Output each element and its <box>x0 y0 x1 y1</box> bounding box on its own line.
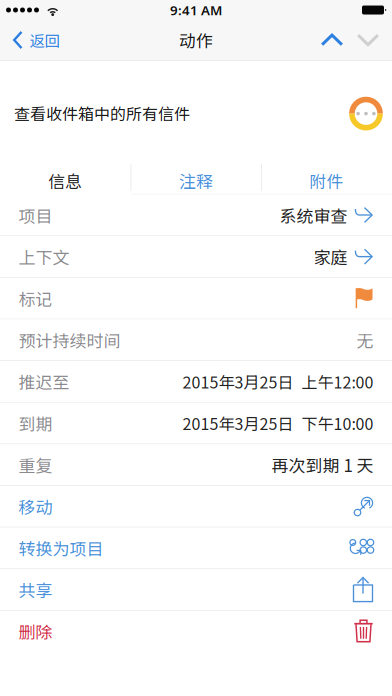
staticText: 转换为项目 <box>18 536 103 560</box>
button[interactable]: 上下文 <box>0 236 392 278</box>
button[interactable]: 附件 <box>261 161 392 195</box>
staticText: 返回 <box>29 29 59 51</box>
staticText: 无 <box>356 328 373 352</box>
button[interactable]: 到期 <box>0 403 392 444</box>
staticText: 2015年3月25日 下午10:00 <box>182 411 373 435</box>
button[interactable]: 转换为项目 <box>0 528 392 569</box>
staticText: 标记 <box>18 286 52 310</box>
staticText: 9:41 AM <box>170 1 222 19</box>
staticText: 查看收件箱中的所有信件 <box>14 101 190 125</box>
button[interactable]: 信息 <box>0 161 131 195</box>
staticText: 信息 <box>48 168 82 193</box>
staticText: 家庭 <box>313 244 347 269</box>
staticText: 重复 <box>18 452 52 477</box>
staticText: 项目 <box>18 203 52 227</box>
staticText: 注释 <box>179 168 213 193</box>
button[interactable]: 预计持续时间 <box>0 319 392 361</box>
button[interactable]: 标记 <box>0 278 392 319</box>
staticText: 上下文 <box>18 244 69 269</box>
staticText: 共享 <box>18 577 52 602</box>
button[interactable]: 移动 <box>0 486 392 527</box>
staticText: 2015年3月25日 上午12:00 <box>182 370 373 393</box>
staticText: 动作 <box>179 28 213 52</box>
button[interactable]: Next item <box>350 20 386 60</box>
button[interactable]: 项目 <box>0 195 392 236</box>
staticText: 到期 <box>18 411 52 435</box>
staticText: 附件 <box>310 168 344 193</box>
staticText: 移动 <box>18 494 52 519</box>
button[interactable]: Previous item <box>314 20 350 60</box>
button[interactable]: 删除 <box>0 611 392 652</box>
staticText: 再次到期 1 天 <box>271 452 373 477</box>
button[interactable]: 注释 <box>131 161 261 195</box>
button[interactable]: 推迟至 <box>0 361 392 403</box>
staticText: 系统审查 <box>279 203 347 227</box>
button[interactable]: 返回 <box>0 20 67 60</box>
staticText: 预计持续时间 <box>18 328 120 352</box>
button[interactable]: 共享 <box>0 569 392 611</box>
staticText: 删除 <box>18 619 52 643</box>
staticText: 推迟至 <box>18 369 69 394</box>
button[interactable]: 重复 <box>0 444 392 486</box>
